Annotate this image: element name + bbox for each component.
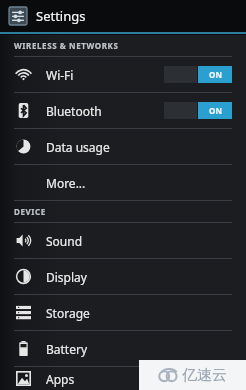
staticText: ON (209, 69, 222, 80)
staticText: Sound (46, 233, 83, 249)
button[interactable]: Apps (0, 367, 246, 390)
staticText: Display (46, 269, 87, 285)
button[interactable]: Toggle (164, 102, 232, 119)
button[interactable]: Bluetooth (0, 93, 246, 128)
staticText: More... (46, 175, 86, 191)
button[interactable]: Toggle (164, 66, 232, 83)
button[interactable]: Battery (0, 331, 246, 366)
staticText: ON (209, 105, 222, 116)
button[interactable]: Sound (0, 223, 246, 258)
button[interactable]: Settings (0, 0, 246, 32)
staticText: Data usage (46, 139, 110, 155)
staticText: Bluetooth (46, 103, 102, 119)
button[interactable]: Data usage (0, 129, 246, 164)
staticText: WIRELESS & NETWORKS (14, 40, 119, 51)
staticText: 亿速云 (182, 366, 227, 385)
button[interactable]: Storage (0, 295, 246, 330)
button[interactable]: Display (0, 259, 246, 294)
staticText: Storage (46, 305, 90, 321)
staticText: DEVICE (14, 206, 46, 217)
button[interactable]: More... (0, 165, 246, 200)
staticText: Wi-Fi (46, 67, 74, 83)
staticText: Battery (46, 341, 88, 357)
staticText: Settings (36, 7, 86, 25)
button[interactable]: Wi-Fi (0, 57, 246, 92)
staticText: Apps (46, 371, 75, 387)
